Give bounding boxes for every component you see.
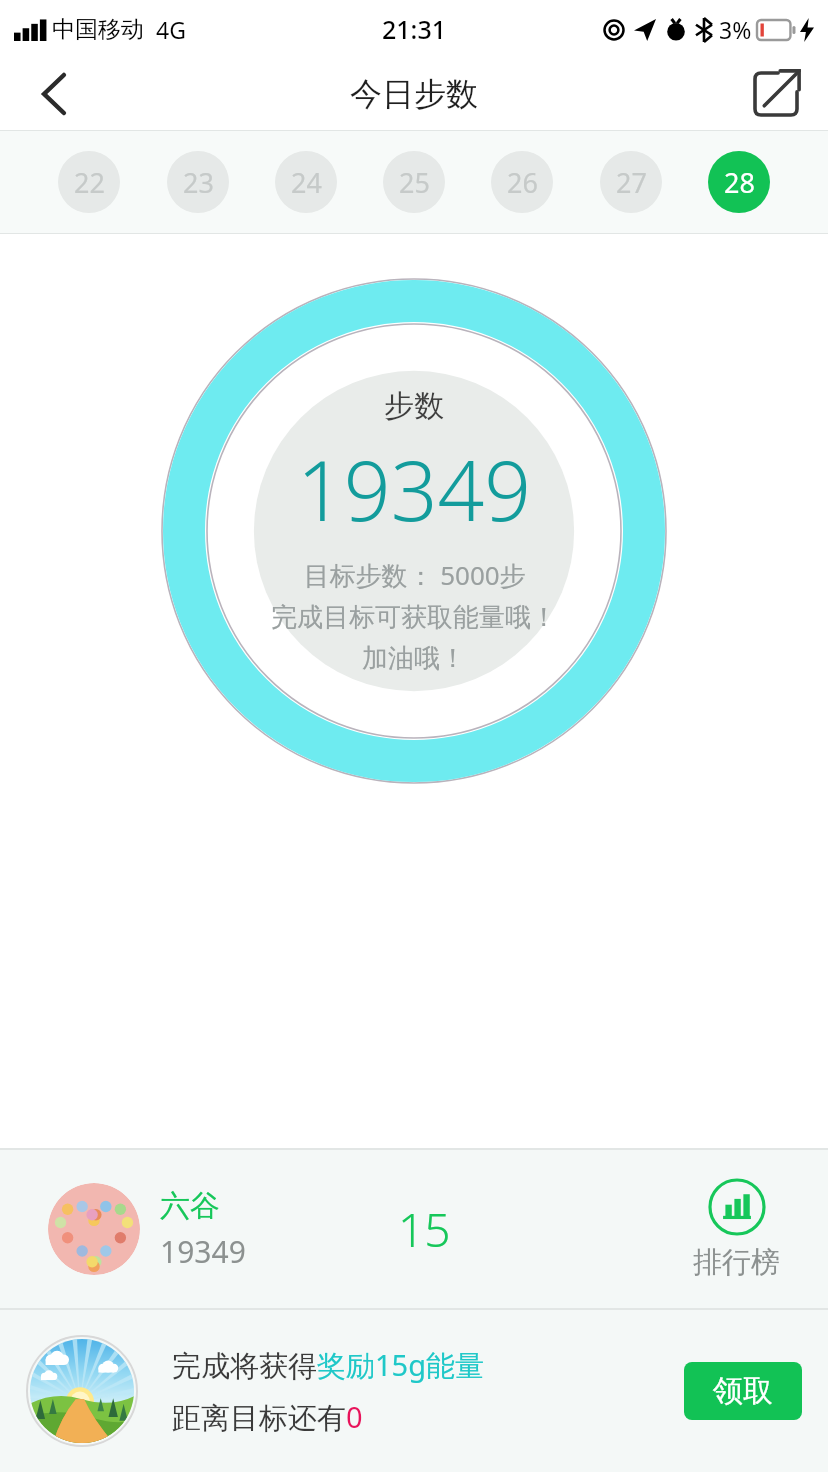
button[interactable]: 排行榜 (693, 1178, 780, 1281)
staticText: 24 (291, 164, 322, 201)
staticText: 距离目标还有0 (172, 1397, 363, 1437)
button[interactable]: 26 (491, 151, 553, 213)
button[interactable]: 25 (383, 151, 445, 213)
staticText: 步数 (384, 387, 444, 425)
staticText: 21:31 (382, 12, 447, 46)
button[interactable]: 28 (708, 151, 770, 213)
button[interactable]: 23 (167, 151, 229, 213)
button[interactable]: Back (26, 66, 82, 122)
staticText: 28 (724, 164, 755, 201)
staticText: 完成目标可获取能量哦！ (271, 601, 557, 634)
staticText: 完成将获得奖励15g能量 (172, 1345, 485, 1385)
button[interactable]: 六谷 (48, 1183, 246, 1275)
staticText: 中国移动 (52, 15, 144, 44)
staticText: 22 (74, 164, 105, 201)
button[interactable]: 领取 (684, 1362, 802, 1420)
staticText: 25 (399, 164, 430, 201)
button[interactable]: 24 (275, 151, 337, 213)
staticText: 27 (616, 164, 647, 201)
staticText: 六谷 (160, 1187, 220, 1225)
staticText: 3% (719, 14, 752, 45)
staticText: 目标步数： 5000步 (303, 557, 526, 593)
staticText: 今日步数 (350, 74, 478, 114)
staticText: 23 (183, 164, 214, 201)
staticText: 19349 (297, 433, 532, 545)
staticText: 排行榜 (693, 1244, 780, 1281)
staticText: 4G (156, 14, 186, 45)
staticText: 19349 (160, 1231, 246, 1272)
staticText: 加油哦！ (362, 642, 466, 675)
staticText: 15 (398, 1198, 451, 1261)
button[interactable]: Share (748, 66, 804, 122)
button[interactable]: 27 (600, 151, 662, 213)
staticText: 领取 (713, 1372, 773, 1410)
staticText: 26 (507, 164, 538, 201)
button[interactable]: 22 (58, 151, 120, 213)
